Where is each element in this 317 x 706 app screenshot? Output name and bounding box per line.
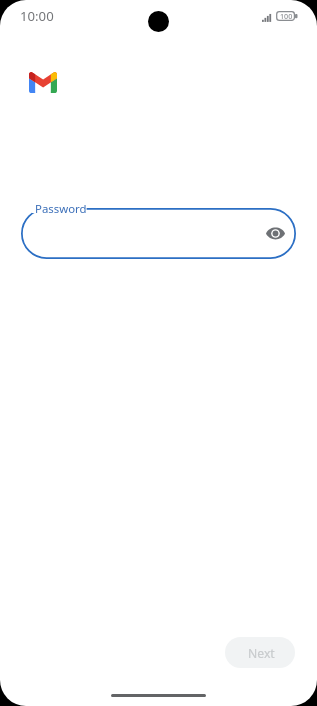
button[interactable]: Next — [225, 637, 295, 668]
staticText: 100 — [280, 11, 293, 21]
button[interactable]: Password — [21, 208, 296, 259]
button[interactable]: Show password — [261, 219, 289, 247]
staticText: Password — [35, 201, 87, 217]
staticText: Next — [248, 645, 275, 662]
staticText: 10:00 — [20, 7, 54, 25]
